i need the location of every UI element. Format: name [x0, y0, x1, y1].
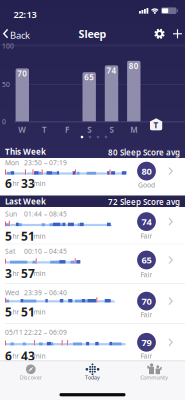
staticText: Discover — [20, 374, 42, 381]
staticText: 79 — [141, 336, 151, 348]
staticText: F — [65, 124, 69, 135]
staticText: T — [42, 124, 47, 135]
button[interactable]: Settings — [151, 26, 167, 42]
staticText: 6 — [5, 348, 12, 364]
staticText: S — [109, 124, 113, 135]
staticText: Last Week — [5, 196, 46, 207]
staticText: 80 — [129, 60, 139, 71]
staticText: hr — [13, 269, 20, 278]
button[interactable]: Sat — [0, 244, 185, 284]
staticText: 23:50 – 07:19 — [24, 158, 67, 167]
button[interactable]: Sun — [0, 207, 185, 244]
staticText: W — [18, 124, 26, 135]
staticText: Fair — [140, 352, 152, 360]
button[interactable]: Today — [62, 360, 123, 400]
staticText: 5 — [5, 304, 12, 320]
staticText: hr — [13, 308, 20, 316]
staticText: Today — [85, 374, 100, 381]
staticText: 65 — [141, 254, 151, 266]
staticText: Sat — [5, 247, 15, 256]
staticText: min — [34, 179, 46, 188]
staticText: 74 — [141, 215, 151, 228]
staticText: 43 — [21, 348, 35, 364]
staticText: Back — [10, 29, 30, 41]
button[interactable]: Add — [169, 26, 185, 42]
staticText: hr — [13, 179, 20, 188]
staticText: 50 — [2, 80, 10, 89]
staticText: 5 — [5, 228, 12, 244]
staticText: Community — [140, 374, 168, 381]
staticText: min — [34, 308, 46, 316]
button[interactable]: Discover — [0, 360, 62, 400]
button[interactable]: Community — [123, 360, 185, 400]
staticText: 100 — [2, 41, 14, 50]
staticText: Mon — [5, 158, 19, 167]
staticText: min — [34, 269, 46, 278]
staticText: Good — [138, 180, 155, 189]
staticText: 80 — [141, 165, 151, 177]
staticText: 72 Sleep Score avg — [108, 196, 180, 207]
staticText: 22:13 — [13, 8, 36, 21]
staticText: hr — [13, 351, 20, 360]
staticText: 57 — [21, 265, 35, 281]
staticText: 05/11 — [5, 328, 23, 337]
staticText: 70 — [141, 295, 151, 307]
staticText: Fair — [140, 231, 152, 240]
button[interactable]: Wed — [0, 284, 185, 324]
staticText: 33 — [21, 175, 35, 191]
staticText: Sleep — [78, 27, 106, 41]
staticText: 0 — [2, 117, 6, 126]
staticText: This Week — [5, 146, 46, 157]
staticText: 6 — [5, 175, 12, 191]
staticText: 80 Sleep Score avg — [108, 147, 180, 158]
staticText: Wed — [5, 288, 19, 297]
staticText: M — [130, 124, 137, 135]
staticText: 51 — [21, 304, 35, 320]
staticText: Fair — [140, 310, 152, 319]
staticText: 70 — [17, 68, 27, 79]
staticText: min — [34, 351, 46, 360]
staticText: Sun — [5, 209, 17, 218]
staticText: 3 — [5, 265, 12, 281]
staticText: 00:10 – 04:45 — [24, 247, 67, 256]
button[interactable]: Back — [0, 22, 32, 45]
staticText: min — [34, 232, 46, 241]
staticText: 74 — [106, 65, 116, 76]
staticText: hr — [13, 232, 20, 241]
staticText: S — [87, 124, 91, 135]
button[interactable]: Mon — [0, 158, 185, 195]
button[interactable]: 05/11 — [0, 324, 185, 360]
staticText: 65 — [84, 72, 94, 82]
staticText: Fair — [140, 270, 152, 279]
staticText: 51 — [21, 228, 35, 244]
staticText: 22:22 – 06:09 — [24, 328, 67, 337]
staticText: 01:44 – 08:45 — [24, 209, 67, 218]
staticText: 23:39 – 06:40 — [24, 288, 67, 297]
staticText: T — [154, 120, 159, 130]
